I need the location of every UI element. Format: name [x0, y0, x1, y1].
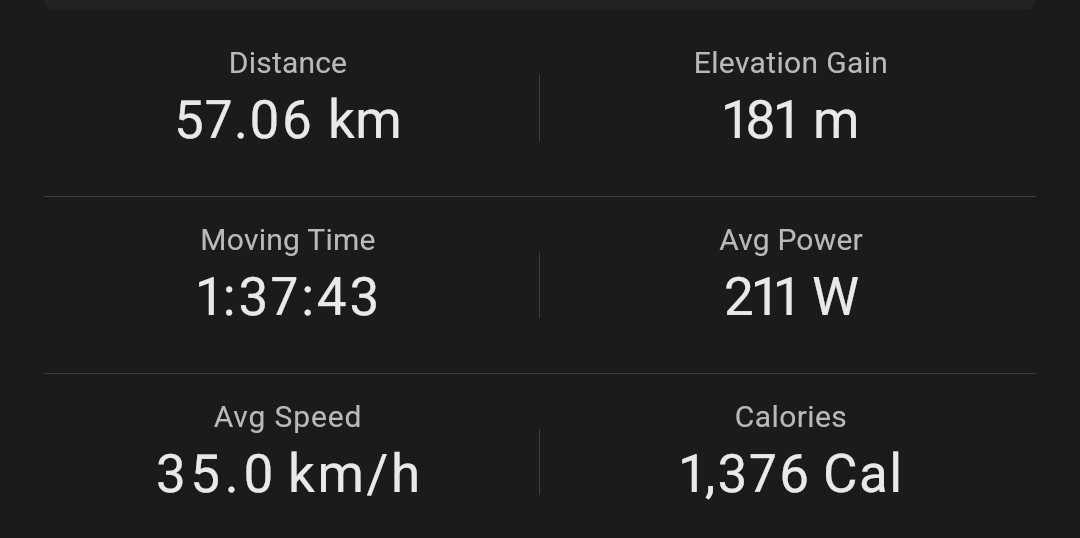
staticText: Avg Power [431, 222, 1080, 257]
staticText: Distance [0, 45, 648, 80]
staticText: 1:37:43 [197, 266, 797, 328]
staticText: m [813, 89, 1080, 151]
button[interactable] [543, 196, 1039, 373]
staticText: 1,376 [680, 443, 1080, 505]
button[interactable] [543, 373, 1039, 538]
staticText: 57.06 [174, 89, 774, 151]
staticText: 211 [724, 266, 1080, 328]
button[interactable] [543, 19, 1039, 196]
staticText: Moving Time [0, 222, 648, 257]
staticText: W [812, 266, 1080, 328]
staticText: 181 [723, 89, 1080, 151]
staticText: km/h [288, 443, 888, 505]
staticText: Calories [431, 399, 1080, 434]
button[interactable] [40, 19, 536, 196]
button[interactable] [40, 373, 536, 538]
staticText: Elevation Gain [431, 45, 1080, 80]
staticText: Cal [823, 443, 1080, 505]
staticText: 35.0 [156, 443, 756, 505]
staticText: km [328, 89, 928, 151]
staticText: Avg Speed [0, 399, 648, 434]
button[interactable] [40, 196, 536, 373]
